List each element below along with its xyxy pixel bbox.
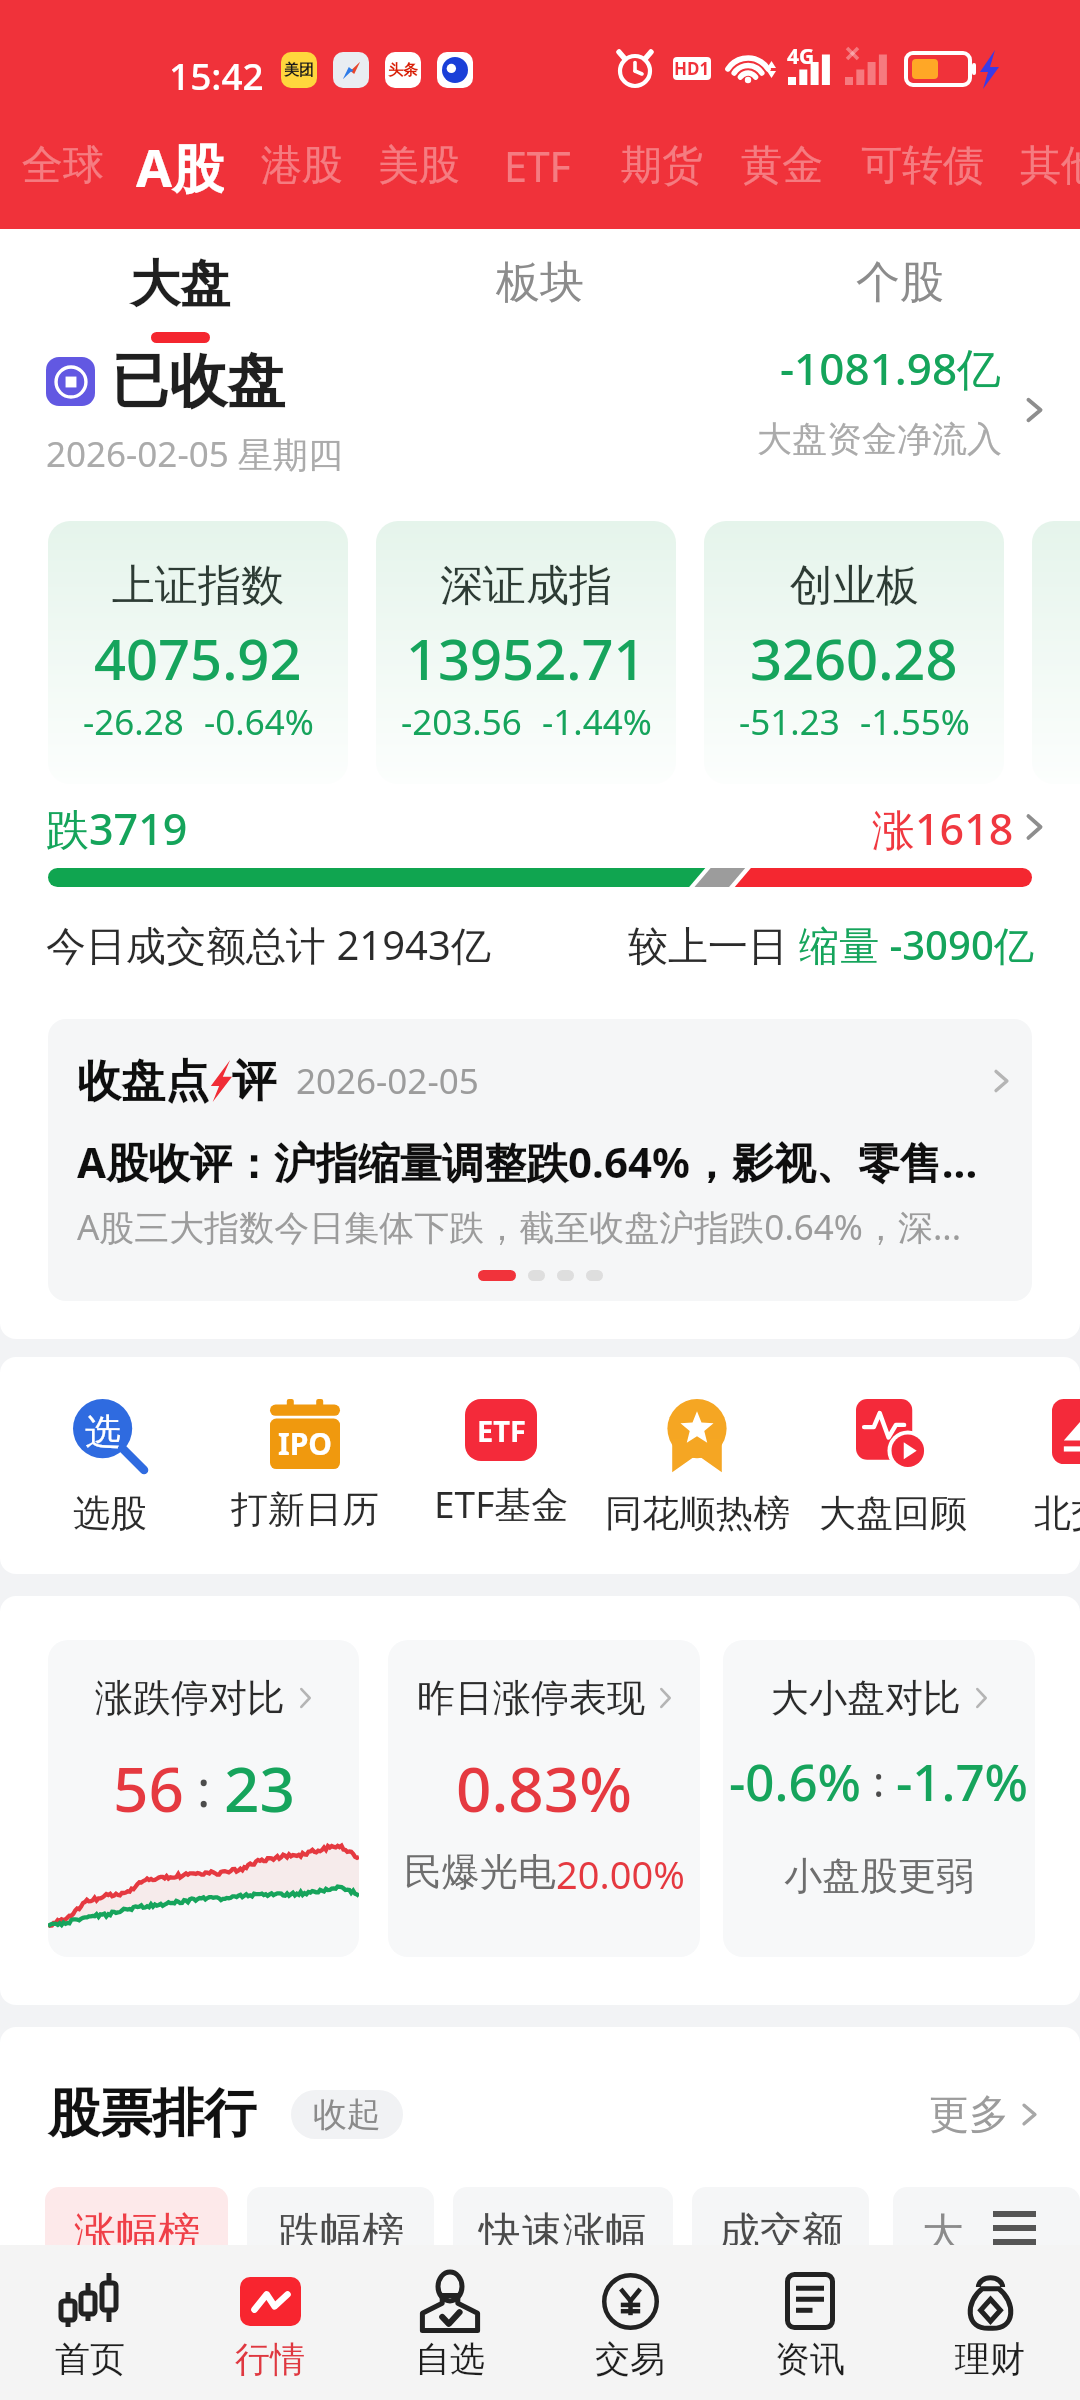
staticText: 交易 (595, 2337, 665, 2381)
button[interactable]: 大盘 (0, 229, 360, 348)
button[interactable]: 同花顺热榜 (599, 1357, 795, 1537)
staticText: 民爆光电 (404, 1848, 556, 1896)
button[interactable]: A股 (136, 131, 224, 201)
staticText: 23 (224, 1746, 295, 1830)
staticText: A股收评：沪指缩量调整跌0.64%，影视、零售... (77, 1133, 978, 1190)
button[interactable]: 板块 (360, 229, 720, 348)
button[interactable]: 深证成指 (376, 521, 676, 784)
staticText: 首页 (55, 2337, 125, 2381)
staticText: 创业板 (790, 559, 919, 613)
staticText: 期货 (621, 140, 703, 192)
staticText: HD1 (674, 57, 710, 80)
staticText: 3260.28 (750, 620, 958, 696)
staticText: -0.6% (729, 1746, 862, 1815)
button[interactable]: 涨幅榜 (45, 2187, 228, 2245)
button[interactable]: 港股 (261, 131, 343, 201)
staticText: -26.28 (83, 698, 184, 746)
staticText: 收起 (313, 2093, 381, 2136)
staticText: 今日成交额总计 21943亿 (46, 917, 491, 971)
staticText: 打新日历 (231, 1486, 379, 1533)
button[interactable]: 个股 (720, 229, 1080, 348)
staticText: 涨跌停对比 (95, 1674, 285, 1722)
staticText: -51.23 (739, 698, 840, 746)
staticText: 上证指数 (112, 559, 284, 613)
staticText: 4075.92 (94, 620, 302, 696)
staticText: 2026-02-05 (296, 1057, 479, 1105)
staticText: ETF基金 (434, 1478, 569, 1529)
button[interactable]: ETF (403, 1357, 599, 1529)
staticText: 美股 (378, 140, 460, 192)
staticText: -1.7% (896, 1746, 1029, 1815)
button[interactable]: 跌3719 (0, 799, 1080, 855)
staticText: 自选 (415, 2337, 485, 2381)
staticText: 大盘回顾 (819, 1490, 967, 1537)
staticText: 大 (922, 2208, 964, 2245)
staticText: 头条 (388, 61, 418, 80)
button[interactable]: 全球 (22, 131, 104, 201)
staticText: 其他 (1020, 140, 1080, 192)
button[interactable]: 已收盘 (0, 345, 1080, 475)
staticText: 个股 (856, 255, 944, 310)
staticText: 已收盘 (111, 345, 285, 418)
button[interactable]: 其他 (1020, 131, 1080, 201)
staticText: 大盘 (130, 253, 230, 316)
staticText: 板块 (496, 255, 584, 310)
staticText: : (184, 1754, 224, 1822)
button[interactable]: 期货 (621, 131, 703, 201)
staticText: 全球 (22, 140, 104, 192)
staticText: 大盘资金净流入 (757, 417, 1002, 461)
staticText: 快速涨幅 (479, 2207, 647, 2245)
staticText: -1.55% (860, 698, 970, 746)
button[interactable]: IPO (207, 1357, 403, 1533)
button[interactable]: 涨跌停对比 (48, 1640, 359, 1957)
staticText: A股三大指数今日集体下跌，截至收盘沪指跌0.64%，深... (77, 1203, 962, 1251)
staticText: 涨幅榜 (74, 2207, 200, 2245)
button[interactable]: 理财 (900, 2245, 1080, 2400)
button[interactable]: 收起 (291, 2090, 403, 2139)
staticText: 2026-02-05 星期四 (46, 430, 343, 475)
staticText: ETF (477, 1411, 526, 1450)
button[interactable]: 美股 (378, 131, 460, 201)
button[interactable]: 大小盘对比 (723, 1640, 1035, 1957)
button[interactable]: ETF (504, 131, 571, 201)
button[interactable]: 交易 (540, 2245, 720, 2400)
button[interactable]: 北交所 (991, 1357, 1080, 1537)
staticText: 深证成指 (440, 559, 612, 613)
button[interactable]: 昨日涨停表现 (388, 1640, 700, 1957)
button[interactable]: 选 (12, 1357, 208, 1537)
button[interactable]: 首页 (0, 2245, 180, 2400)
staticText: 理财 (955, 2337, 1025, 2381)
staticText: 0.83% (456, 1746, 633, 1830)
button[interactable]: 大盘回顾 (795, 1357, 991, 1537)
staticText: 资讯 (775, 2337, 845, 2381)
button[interactable]: 收盘点 (48, 1019, 1032, 1301)
button[interactable]: 黄金 (741, 131, 823, 201)
button[interactable]: 更多 (929, 2089, 1038, 2139)
staticText: 收盘点 (77, 1054, 209, 1109)
button[interactable]: Display options (975, 2193, 1053, 2245)
button[interactable]: 上证指数 (48, 521, 348, 784)
staticText: 港股 (261, 140, 343, 192)
staticText: IPO (278, 1423, 333, 1464)
button[interactable]: 可转债 (861, 131, 984, 201)
button[interactable]: 成交额 (692, 2187, 869, 2245)
button[interactable]: 创业板 (704, 521, 1004, 784)
staticText: 跌3719 (46, 799, 188, 855)
staticText: -1081.98亿 (780, 338, 1002, 398)
staticText: 可转债 (861, 140, 984, 192)
staticText: 小盘股更弱 (784, 1852, 974, 1900)
button[interactable]: 快速涨幅 (453, 2187, 673, 2245)
staticText: 15:42 (169, 50, 264, 100)
staticText: 涨1618 (872, 799, 1014, 855)
staticText: 北交所 (1034, 1490, 1080, 1537)
button[interactable]: 行情 (180, 2245, 360, 2400)
staticText: 跌幅榜 (278, 2207, 404, 2245)
button[interactable]: 自选 (360, 2245, 540, 2400)
staticText: -1.44% (542, 698, 652, 746)
button[interactable]: 资讯 (720, 2245, 900, 2400)
staticText: 缩量 -3090亿 (799, 917, 1034, 971)
button[interactable]: 跌幅榜 (247, 2187, 434, 2245)
staticText: : (862, 1752, 896, 1809)
staticText: 更多 (929, 2089, 1009, 2139)
staticText: 黄金 (741, 140, 823, 192)
